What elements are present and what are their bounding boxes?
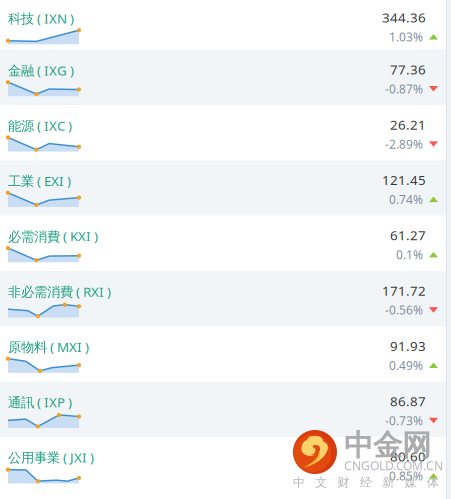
staticText: 0.74% <box>389 191 423 207</box>
staticText: 91.93 <box>390 337 426 355</box>
button[interactable]: 必需消費 ( KXI ) <box>0 216 446 271</box>
staticText: 1.03% <box>389 29 423 45</box>
staticText: 媒 <box>404 475 416 490</box>
staticText: 26.21 <box>390 116 426 133</box>
staticText: 0.85% <box>389 468 423 484</box>
staticText: 0.1% <box>396 247 423 263</box>
staticText: CNGOLD.COM.CN <box>344 457 443 473</box>
staticText: 必需消費 ( KXI ) <box>8 227 98 245</box>
staticText: 财 <box>338 475 350 490</box>
staticText: 科技 ( IXN ) <box>8 9 74 27</box>
button[interactable]: 通訊 ( IXP ) <box>0 382 446 437</box>
staticText: 金融 ( IXG ) <box>8 61 74 79</box>
button[interactable]: 工業 ( EXI ) <box>0 160 446 216</box>
staticText: 中 <box>293 475 305 490</box>
button[interactable]: 科技 ( IXN ) <box>0 0 446 50</box>
staticText: 86.87 <box>390 392 426 410</box>
staticText: -0.56% <box>385 302 423 318</box>
staticText: 80.60 <box>390 447 426 465</box>
staticText: 公用事業 ( JXI ) <box>8 448 94 466</box>
button[interactable]: 能源 ( IXC ) <box>0 105 446 160</box>
staticText: 体 <box>427 475 439 490</box>
staticText: 121.45 <box>382 171 426 189</box>
staticText: 61.27 <box>390 226 426 244</box>
button[interactable]: 公用事業 ( JXI ) <box>0 437 446 492</box>
staticText: 原物料 ( MXI ) <box>8 338 89 356</box>
staticText: 能源 ( IXC ) <box>8 117 72 134</box>
staticText: 非必需消費 ( RXI ) <box>8 283 111 300</box>
staticText: 经 <box>360 475 372 490</box>
staticText: 新 <box>382 475 394 490</box>
staticText: -0.73% <box>385 413 423 428</box>
staticText: 0.49% <box>389 357 423 373</box>
button[interactable]: 非必需消費 ( RXI ) <box>0 271 446 326</box>
staticText: 77.36 <box>390 60 426 78</box>
staticText: 通訊 ( IXP ) <box>8 393 72 411</box>
staticText: 171.72 <box>382 282 426 299</box>
staticText: -0.87% <box>385 81 423 97</box>
staticText: 344.36 <box>382 8 426 26</box>
staticText: -2.89% <box>385 136 423 152</box>
button[interactable]: 原物料 ( MXI ) <box>0 326 446 382</box>
button[interactable]: 金融 ( IXG ) <box>0 50 446 105</box>
staticText: 中金网 <box>344 427 431 463</box>
staticText: 工業 ( EXI ) <box>8 172 71 190</box>
staticText: 文 <box>315 475 327 490</box>
